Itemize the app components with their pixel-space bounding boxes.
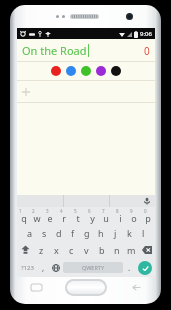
staticText: m	[127, 244, 136, 256]
button[interactable]: Recents	[31, 284, 42, 291]
button[interactable]: k	[122, 224, 136, 241]
staticText: u	[103, 212, 109, 224]
button[interactable]: m	[124, 241, 139, 258]
staticText: 6	[88, 208, 91, 214]
staticText: p	[145, 212, 151, 224]
button[interactable]: l	[136, 224, 150, 241]
button[interactable]: 7	[99, 207, 113, 224]
staticText: 4	[60, 208, 63, 214]
button[interactable]	[110, 195, 155, 207]
staticText: QWERTY	[82, 264, 105, 271]
button[interactable]: Color 2	[81, 66, 91, 76]
button[interactable]: Back	[130, 284, 141, 291]
staticText: o	[131, 212, 137, 224]
button[interactable]: 6	[85, 207, 99, 224]
staticText: On the Road	[22, 43, 87, 58]
button[interactable]: a	[22, 224, 37, 241]
staticText: l	[142, 227, 145, 239]
staticText: 9:06	[140, 30, 152, 38]
staticText: a	[27, 227, 33, 239]
button[interactable]: 5	[71, 207, 85, 224]
button[interactable]: Done	[138, 261, 152, 275]
button[interactable]: ,	[37, 258, 49, 277]
staticText: 9	[130, 208, 133, 214]
button[interactable]: .	[123, 258, 135, 277]
button[interactable]: x	[49, 241, 64, 258]
staticText: 5	[74, 208, 77, 214]
staticText: 2	[32, 208, 35, 214]
staticText: h	[98, 227, 104, 239]
staticText: s	[42, 227, 47, 239]
staticText: n	[114, 244, 120, 256]
staticText: 0	[144, 208, 147, 214]
staticText: k	[127, 227, 132, 239]
button[interactable]: n	[109, 241, 124, 258]
button[interactable]: g	[80, 224, 94, 241]
button[interactable]: j	[108, 224, 122, 241]
staticText: 3	[46, 208, 49, 214]
button[interactable]: s	[37, 224, 52, 241]
staticText: 0	[144, 44, 150, 58]
button[interactable]: v	[79, 241, 94, 258]
staticText: x	[54, 244, 59, 256]
staticText: q	[21, 212, 27, 224]
button[interactable]: 4	[57, 207, 71, 224]
button[interactable]: f	[66, 224, 80, 241]
staticText: i	[119, 212, 122, 224]
button[interactable]: 8	[113, 207, 127, 224]
button[interactable]: Color 3	[96, 66, 106, 76]
staticText: g	[84, 227, 90, 239]
button[interactable]: ?123	[17, 258, 37, 277]
button[interactable]: Voice input	[143, 197, 151, 205]
button[interactable]: Shift	[17, 241, 33, 258]
button[interactable]: z	[33, 241, 49, 258]
staticText: z	[39, 244, 44, 256]
button[interactable]: 9	[127, 207, 141, 224]
button[interactable]: Home	[65, 279, 107, 296]
button[interactable]: 2	[30, 207, 43, 224]
button[interactable]: c	[64, 241, 79, 258]
button[interactable]: b	[94, 241, 109, 258]
staticText: e	[47, 212, 53, 224]
staticText: b	[99, 244, 105, 256]
staticText: 8	[116, 208, 119, 214]
staticText: f	[71, 227, 75, 239]
button[interactable]: Backspace	[139, 241, 155, 258]
button[interactable]: 3	[43, 207, 57, 224]
staticText: d	[56, 227, 62, 239]
staticText: t	[76, 212, 80, 224]
button[interactable]: QWERTY	[63, 262, 123, 273]
button[interactable]: d	[52, 224, 66, 241]
staticText: v	[84, 244, 89, 256]
staticText: 7	[102, 208, 105, 214]
button[interactable]: Color 0	[51, 66, 61, 76]
staticText: .	[128, 262, 131, 273]
staticText: y	[90, 212, 95, 224]
staticText: r	[62, 212, 66, 224]
staticText: c	[69, 244, 74, 256]
button[interactable]: 1	[17, 207, 30, 224]
button[interactable]: Color 4	[111, 66, 121, 76]
staticText: ?123	[21, 264, 34, 272]
button[interactable]: Change language	[49, 258, 63, 277]
button[interactable]: 0	[141, 207, 155, 224]
staticText: ,	[42, 262, 45, 273]
staticText: j	[114, 227, 117, 239]
staticText: 1	[19, 208, 22, 214]
staticText: w	[33, 212, 41, 224]
button[interactable]: Color 1	[66, 66, 76, 76]
button[interactable]: On the Road	[17, 39, 155, 61]
button[interactable]: h	[94, 224, 108, 241]
